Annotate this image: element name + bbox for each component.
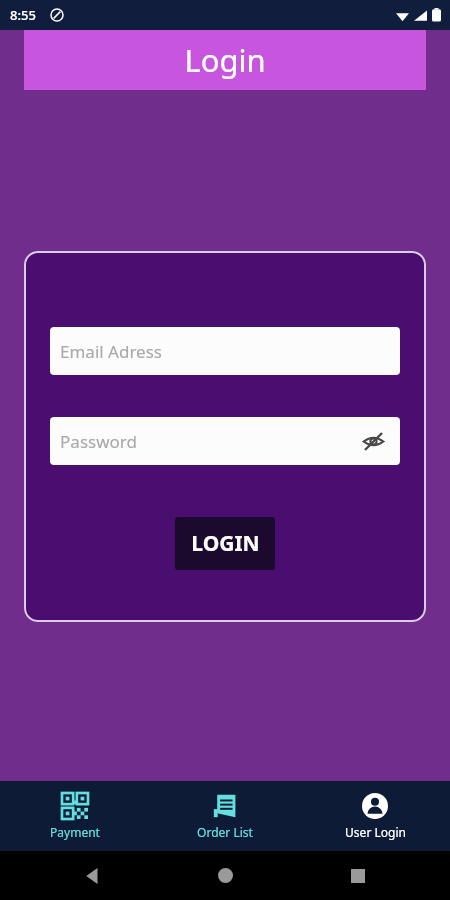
staticText: Email Adress: [60, 340, 162, 363]
button[interactable]: Password: [50, 417, 400, 465]
button[interactable]: Email Adress: [50, 327, 400, 375]
button[interactable]: Order List: [150, 781, 300, 851]
staticText: User Login: [345, 824, 406, 840]
staticText: Payment: [50, 824, 100, 840]
button[interactable]: Payment: [0, 781, 150, 851]
button[interactable]: Home: [218, 868, 233, 883]
button[interactable]: LOGIN: [175, 517, 275, 570]
button[interactable]: User Login: [300, 781, 450, 851]
staticText: Password: [60, 430, 137, 453]
button[interactable]: Toggle password visibility: [358, 426, 388, 456]
staticText: Order List: [197, 824, 253, 840]
staticText: 8:55: [10, 6, 36, 24]
button[interactable]: Back: [85, 868, 101, 884]
staticText: LOGIN: [191, 529, 260, 558]
staticText: Login: [184, 39, 266, 81]
